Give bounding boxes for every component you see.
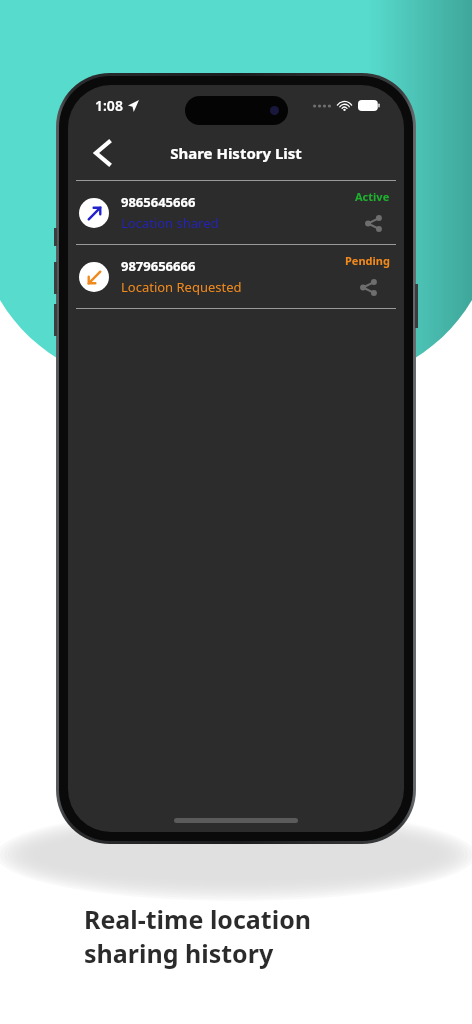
staticText: 1:08 [95, 96, 123, 115]
button[interactable]: 9879656666 [68, 245, 404, 308]
staticText: Share History List [170, 143, 302, 163]
button[interactable]: Back [80, 131, 124, 175]
staticText: Real-time location [84, 902, 312, 936]
staticText: 9879656666 [121, 257, 196, 275]
staticText: Location shared [121, 214, 219, 232]
staticText: Active [355, 189, 390, 204]
button[interactable]: Share [360, 210, 386, 236]
button[interactable]: 9865645666 [68, 181, 404, 244]
staticText: 9865645666 [121, 193, 196, 211]
staticText: sharing history [84, 936, 274, 970]
staticText: Location Requested [121, 278, 242, 296]
button[interactable]: Share [355, 274, 381, 300]
staticText: Pending [345, 253, 390, 268]
